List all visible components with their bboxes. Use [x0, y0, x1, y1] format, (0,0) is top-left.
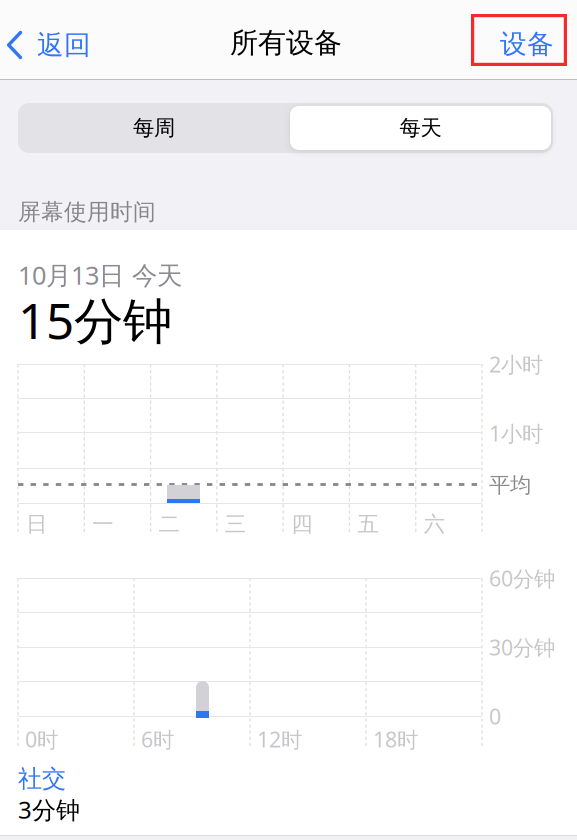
staticText: 0时 — [25, 725, 58, 753]
staticText: 一 — [92, 511, 113, 537]
staticText: 社交 — [18, 764, 66, 793]
staticText: 12时 — [257, 725, 302, 753]
button[interactable]: 每周 — [18, 103, 290, 153]
staticText: 10月13日 今天 — [18, 258, 182, 292]
staticText: 设备 — [500, 28, 554, 60]
staticText: 3分钟 — [18, 793, 80, 825]
staticText: 六 — [424, 511, 445, 537]
button[interactable]: 社交 — [18, 764, 238, 825]
staticText: 日 — [26, 511, 47, 537]
staticText: 屏幕使用时间 — [18, 198, 156, 226]
staticText: 60分钟 — [489, 564, 555, 592]
staticText: 30分钟 — [489, 633, 555, 661]
button[interactable]: 设备 — [471, 14, 567, 66]
staticText: 2小时 — [489, 350, 543, 378]
button[interactable]: 每天 — [290, 106, 551, 150]
staticText: 四 — [291, 511, 312, 537]
staticText: 三 — [225, 511, 246, 537]
staticText: 15分钟 — [18, 287, 172, 352]
staticText: 二 — [159, 511, 180, 537]
staticText: 每天 — [399, 115, 441, 141]
staticText: 6时 — [141, 725, 174, 753]
staticText: 每周 — [133, 115, 175, 141]
staticText: 所有设备 — [230, 26, 342, 60]
staticText: 五 — [357, 511, 378, 537]
staticText: 18时 — [373, 725, 418, 753]
staticText: 平均 — [489, 472, 531, 498]
staticText: 0 — [489, 702, 501, 730]
button[interactable]: 返回 — [6, 21, 102, 69]
staticText: 1小时 — [489, 419, 543, 447]
staticText: 返回 — [37, 29, 91, 61]
